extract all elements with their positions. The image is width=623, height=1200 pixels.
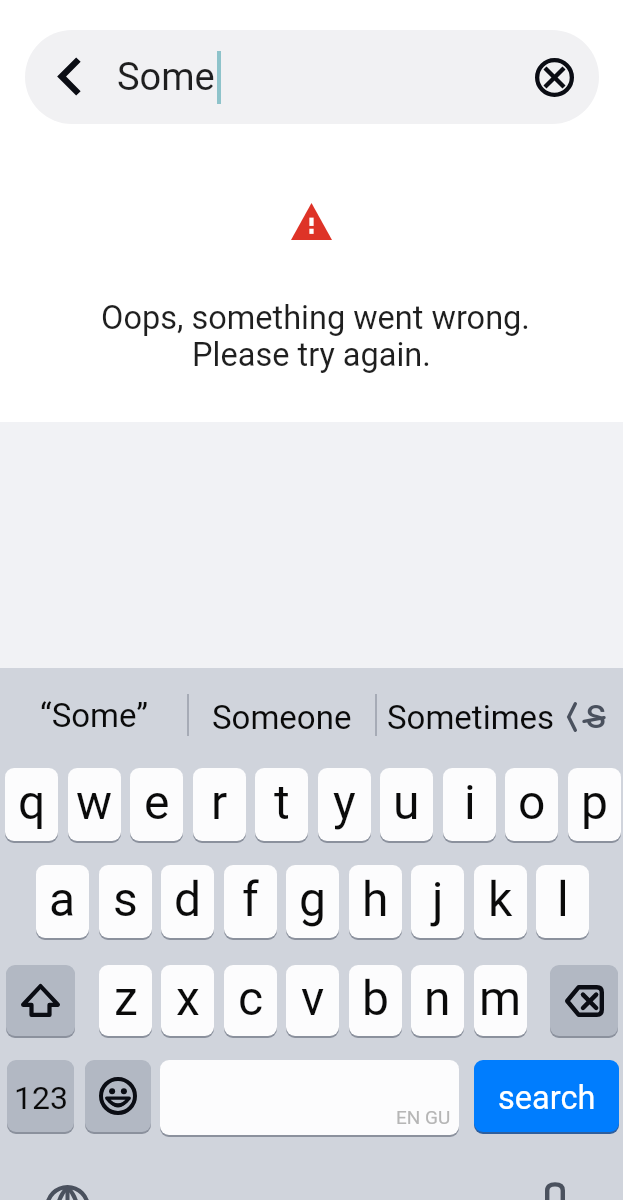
button[interactable]: “Some” xyxy=(0,668,188,762)
staticText: n xyxy=(424,970,451,1026)
button[interactable]: Voice input xyxy=(528,1168,584,1200)
button[interactable]: Someone xyxy=(188,668,376,762)
button[interactable]: h xyxy=(349,865,402,938)
staticText: z xyxy=(114,970,138,1026)
button[interactable]: Clear search xyxy=(521,44,587,110)
button[interactable]: n xyxy=(411,965,464,1036)
staticText: v xyxy=(301,970,325,1026)
button[interactable]: d xyxy=(161,865,214,938)
staticText: b xyxy=(362,970,389,1026)
staticText: a xyxy=(49,871,76,927)
button[interactable]: t xyxy=(255,768,308,841)
button[interactable]: i xyxy=(443,768,496,841)
button[interactable]: search xyxy=(474,1060,619,1132)
button[interactable]: w xyxy=(68,768,121,841)
staticText: k xyxy=(488,871,513,927)
button[interactable]: Backspace xyxy=(550,965,618,1036)
button[interactable]: q xyxy=(5,768,58,841)
staticText: p xyxy=(581,774,608,830)
staticText: j xyxy=(432,871,444,927)
staticText: q xyxy=(18,774,46,830)
staticText: c xyxy=(238,970,264,1026)
staticText: h xyxy=(362,871,389,927)
button[interactable]: y xyxy=(318,768,371,841)
button[interactable]: s xyxy=(99,865,152,938)
button[interactable]: r xyxy=(193,768,246,841)
button[interactable]: Numbers xyxy=(7,1060,74,1132)
staticText: “Some” xyxy=(40,696,149,735)
button[interactable]: u xyxy=(380,768,433,841)
staticText: e xyxy=(144,774,170,830)
staticText: l xyxy=(557,871,569,927)
staticText: d xyxy=(174,871,202,927)
staticText: Oops, something went wrong. xyxy=(4,299,623,337)
button[interactable]: l xyxy=(536,865,589,938)
button[interactable]: o xyxy=(505,768,558,841)
button[interactable]: v xyxy=(286,965,339,1036)
staticText: x xyxy=(176,970,200,1026)
button[interactable]: e xyxy=(130,768,183,841)
button[interactable]: Emoji xyxy=(85,1060,151,1132)
staticText: s xyxy=(113,871,138,927)
button[interactable]: p xyxy=(568,768,621,841)
staticText: s xyxy=(585,689,607,738)
button[interactable]: Back xyxy=(37,43,103,109)
staticText: w xyxy=(76,774,113,830)
staticText: f xyxy=(242,871,259,927)
staticText: i xyxy=(464,774,476,830)
staticText: Some xyxy=(117,55,215,100)
staticText: Sometimes xyxy=(387,698,555,737)
button[interactable]: f xyxy=(224,865,277,938)
staticText: 123 xyxy=(14,1079,68,1117)
button[interactable]: m xyxy=(474,965,527,1036)
button[interactable]: b xyxy=(349,965,402,1036)
button[interactable]: Shift xyxy=(6,965,75,1036)
staticText: Please try again. xyxy=(0,336,623,374)
staticText: t xyxy=(274,774,290,830)
staticText: EN GU xyxy=(396,1106,451,1128)
staticText: g xyxy=(299,871,326,927)
staticText: m xyxy=(479,970,522,1026)
button[interactable]: z xyxy=(99,965,152,1036)
button[interactable]: Change language xyxy=(34,1174,102,1200)
staticText: r xyxy=(211,774,228,830)
staticText: y xyxy=(333,774,356,830)
staticText: o xyxy=(518,774,546,830)
button[interactable]: More suggestions xyxy=(560,688,616,744)
button[interactable]: c xyxy=(224,965,277,1036)
button[interactable]: Space xyxy=(160,1060,459,1135)
button[interactable]: x xyxy=(161,965,214,1036)
button[interactable]: g xyxy=(286,865,339,938)
staticText: search xyxy=(498,1079,596,1117)
button[interactable]: k xyxy=(474,865,527,938)
button[interactable]: j xyxy=(411,865,464,938)
button[interactable]: a xyxy=(36,865,89,938)
button[interactable]: Sometimes xyxy=(376,668,566,762)
staticText: Someone xyxy=(212,698,352,737)
staticText: u xyxy=(393,774,420,830)
